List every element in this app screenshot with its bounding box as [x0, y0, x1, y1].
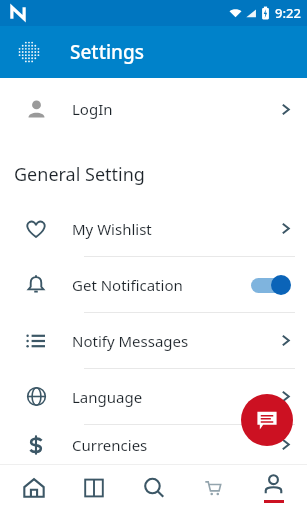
- staticText: Get Notification: [72, 275, 183, 295]
- staticText: My Wishlist: [72, 219, 152, 239]
- button[interactable]: Search: [128, 464, 180, 512]
- button[interactable]: My Wishlist: [0, 201, 307, 256]
- button[interactable]: Open navigation menu: [12, 35, 46, 69]
- staticText: General Setting: [14, 162, 145, 187]
- button[interactable]: Cart: [187, 464, 239, 512]
- button[interactable]: Catalog: [68, 464, 120, 512]
- staticText: Currencies: [72, 435, 148, 455]
- button[interactable]: Get Notification: [0, 257, 307, 312]
- button[interactable]: Currencies: [0, 425, 307, 464]
- button[interactable]: Notify Messages: [0, 313, 307, 368]
- staticText: 9:22: [275, 4, 301, 22]
- staticText: LogIn: [72, 99, 113, 119]
- staticText: Notify Messages: [72, 331, 189, 351]
- staticText: Settings: [70, 39, 144, 65]
- button[interactable]: Messages: [241, 394, 293, 446]
- button[interactable]: LogIn: [0, 86, 307, 132]
- button[interactable]: Account: [247, 464, 299, 512]
- staticText: Language: [72, 387, 143, 407]
- button[interactable]: Language: [0, 369, 307, 424]
- button[interactable]: Home: [8, 464, 60, 512]
